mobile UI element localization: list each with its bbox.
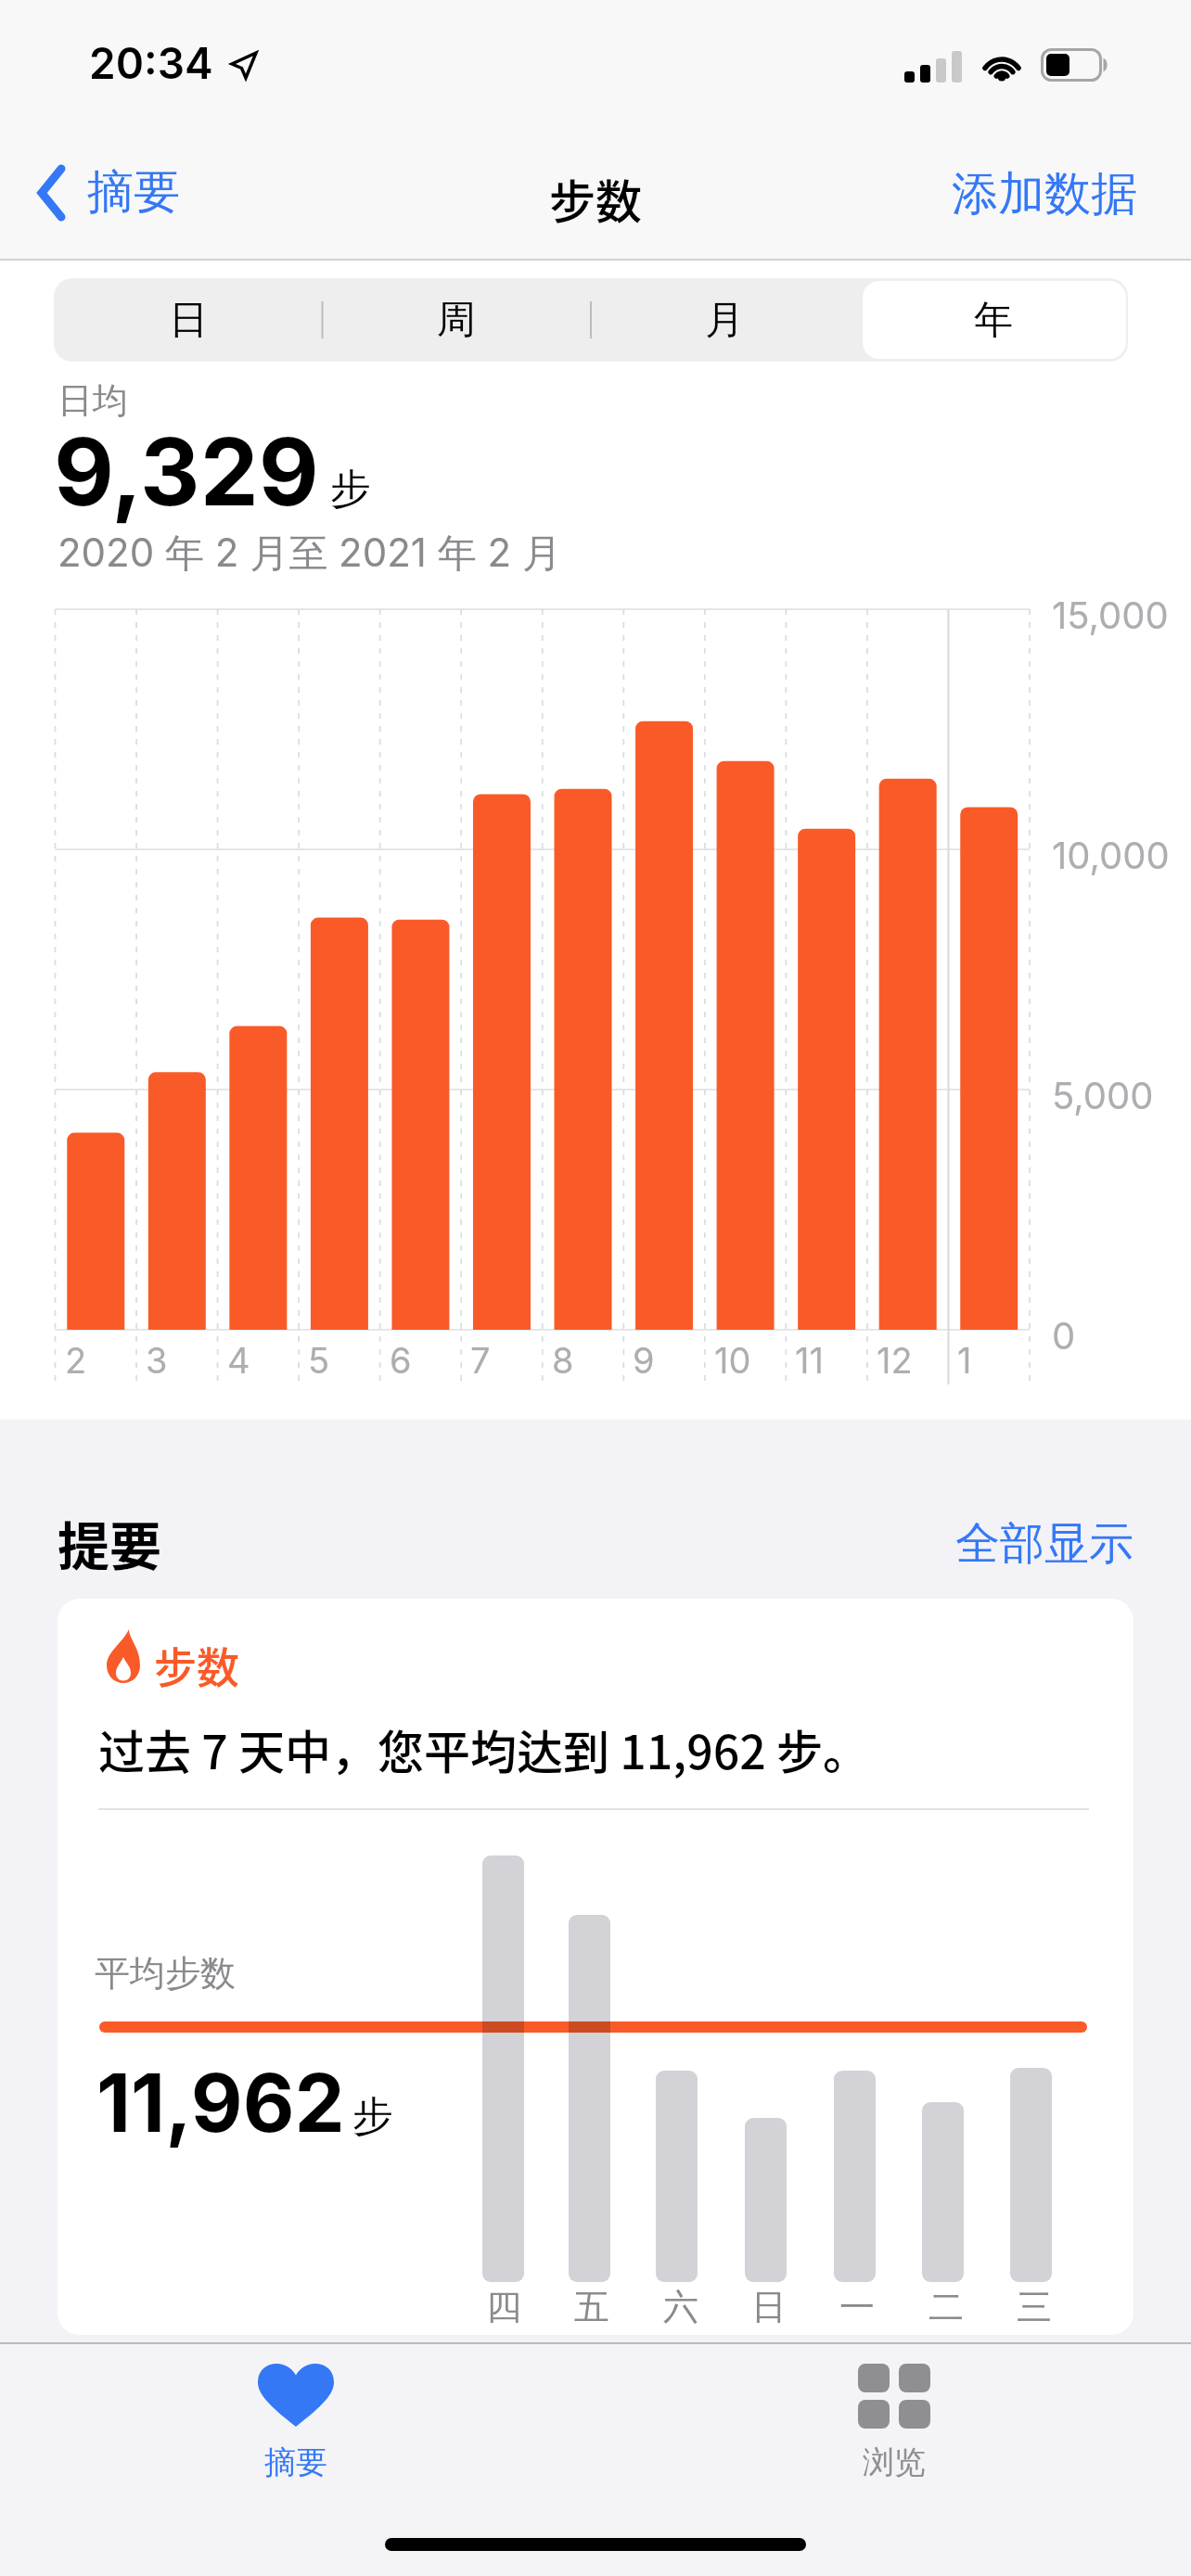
staticText: 5,000 (1052, 1073, 1154, 1117)
staticText: 3 (146, 1339, 168, 1382)
staticText: 五 (574, 2285, 609, 2329)
staticText: 过去 7 天中，您平均达到 11,962 步。 (98, 1715, 869, 1782)
staticText: 10,000 (1052, 833, 1170, 877)
staticText: 7 (470, 1339, 491, 1382)
staticText: 添加数据 (952, 165, 1137, 223)
staticText: 浏览 (863, 2442, 926, 2482)
staticText: 摘要 (264, 2442, 327, 2482)
button[interactable]: 日 (54, 278, 322, 362)
staticText: 步数 (549, 165, 642, 232)
button[interactable]: 摘要 (240, 2364, 352, 2482)
staticText: 步 (352, 2091, 393, 2142)
staticText: 提要 (58, 1505, 161, 1580)
staticText: 日均 (58, 378, 128, 423)
button[interactable]: 周 (322, 278, 590, 362)
staticText: 4 (227, 1339, 250, 1382)
staticText: 三 (1017, 2285, 1052, 2329)
button[interactable]: 全部显示 (955, 1516, 1133, 1572)
staticText: 2 (65, 1339, 87, 1382)
button[interactable]: 年 (859, 278, 1128, 362)
staticText: 二 (928, 2285, 964, 2329)
staticText: 10 (714, 1339, 751, 1382)
staticText: 6 (390, 1339, 412, 1382)
staticText: 六 (663, 2285, 698, 2329)
staticText: 12 (877, 1339, 913, 1382)
button[interactable]: 添加数据 (952, 165, 1137, 223)
staticText: 20:34 (89, 37, 213, 89)
staticText: 全部显示 (955, 1516, 1133, 1572)
button[interactable]: 摘要 (37, 163, 180, 222)
button[interactable]: 浏览 (839, 2364, 950, 2482)
staticText: 平均步数 (95, 1951, 236, 1996)
staticText: 年 (974, 296, 1013, 345)
staticText: 摘要 (87, 163, 180, 222)
staticText: 日 (169, 296, 208, 345)
staticText: 11,962 (96, 2055, 345, 2151)
staticText: 周 (437, 296, 476, 345)
staticText: 11 (795, 1339, 824, 1382)
staticText: 1 (957, 1339, 972, 1382)
staticText: 一 (839, 2285, 875, 2329)
staticText: 8 (552, 1339, 574, 1382)
staticText: 日 (751, 2285, 787, 2329)
staticText: 5 (308, 1339, 330, 1382)
staticText: 步数 (154, 1634, 239, 1696)
staticText: 15,000 (1052, 593, 1169, 637)
staticText: 9,329 (54, 415, 319, 528)
staticText: 2020 年 2 月至 2021 年 2 月 (58, 529, 561, 578)
staticText: 0 (1052, 1313, 1076, 1358)
staticText: 四 (486, 2285, 521, 2329)
staticText: 9 (633, 1339, 655, 1382)
staticText: 步 (330, 464, 371, 515)
button[interactable]: 步数 (58, 1599, 1133, 2335)
button[interactable]: 月 (590, 278, 859, 362)
staticText: 月 (705, 296, 744, 345)
